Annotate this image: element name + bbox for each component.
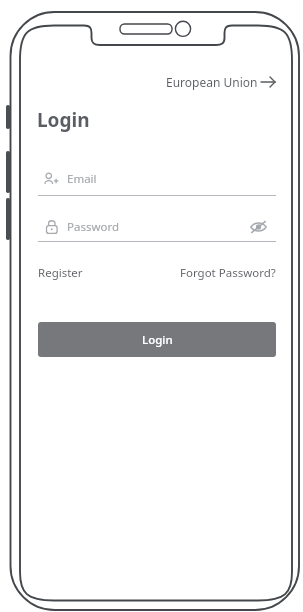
button[interactable]: Password xyxy=(38,213,276,242)
staticText: Login xyxy=(142,332,173,348)
staticText: Email xyxy=(67,171,97,187)
staticText: Password xyxy=(67,219,120,235)
staticText: Login xyxy=(37,107,90,133)
staticText: European Union xyxy=(166,74,258,90)
button[interactable]: Show password xyxy=(248,217,268,237)
button[interactable]: European Union xyxy=(164,72,278,92)
button[interactable]: Login xyxy=(38,322,276,357)
button[interactable]: Register xyxy=(38,265,83,281)
button[interactable]: Forgot Password? xyxy=(180,265,276,281)
button[interactable]: Email xyxy=(38,167,276,196)
